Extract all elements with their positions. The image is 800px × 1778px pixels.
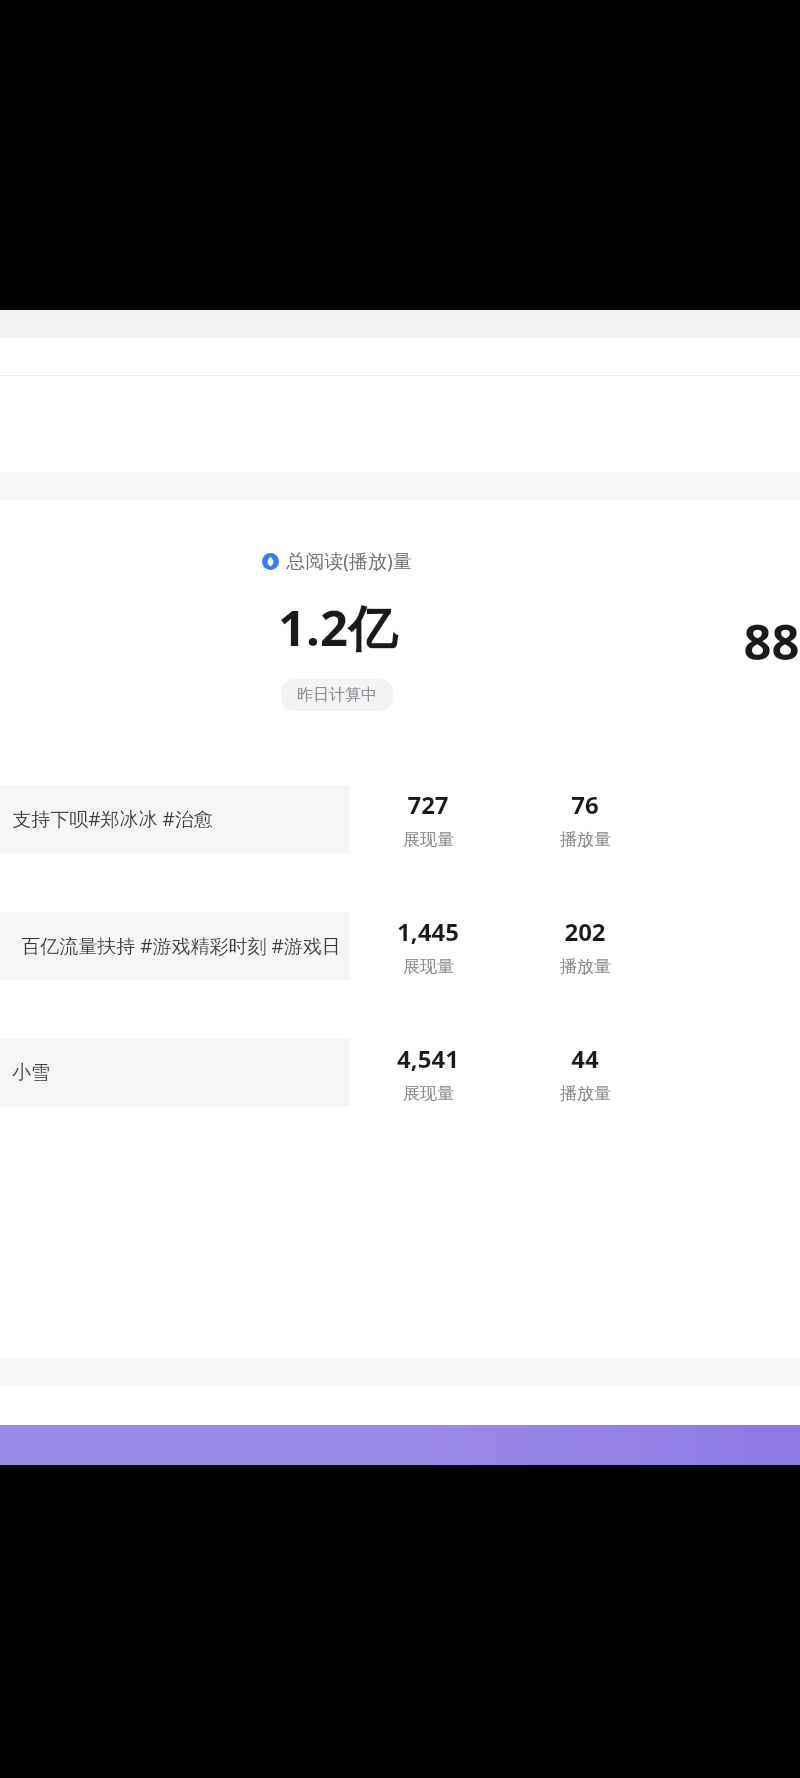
staticText: 播放量 [560, 1083, 611, 1104]
staticText: 1.2亿 [278, 594, 397, 661]
button[interactable]: 88 [743, 608, 800, 675]
button[interactable]: 小雪 [0, 1009, 800, 1136]
staticText: 百亿流量扶持 #游戏精彩时刻 #游戏日常 [12, 933, 350, 959]
staticText: 播放量 [560, 829, 611, 850]
staticText: 昨日计算中 [297, 685, 377, 705]
staticText: 44 [571, 1042, 599, 1075]
staticText: 202 [564, 915, 606, 948]
staticText: 展现量 [403, 956, 454, 977]
staticText: 总阅读(播放)量 [286, 548, 412, 574]
staticText: 小雪 [12, 1061, 50, 1085]
staticText: 727 [407, 788, 449, 821]
staticText: 展现量 [403, 829, 454, 850]
button[interactable]: 支持下呗#郑冰冰 #治愈 [0, 755, 800, 882]
button[interactable]: 百亿流量扶持 #游戏精彩时刻 #游戏日常 [0, 882, 800, 1009]
staticText: 播放量 [560, 956, 611, 977]
button[interactable]: 昨日计算中 [281, 679, 393, 711]
button[interactable]: 总阅读(播放)量 [206, 548, 468, 711]
staticText: 支持下呗#郑冰冰 #治愈 [12, 806, 213, 832]
button[interactable]: Promotion banner [0, 1425, 800, 1465]
staticText: 88 [743, 608, 800, 675]
staticText: 展现量 [403, 1083, 454, 1104]
staticText: 1,445 [397, 915, 459, 948]
staticText: 76 [571, 788, 599, 821]
staticText: 4,541 [397, 1042, 459, 1075]
